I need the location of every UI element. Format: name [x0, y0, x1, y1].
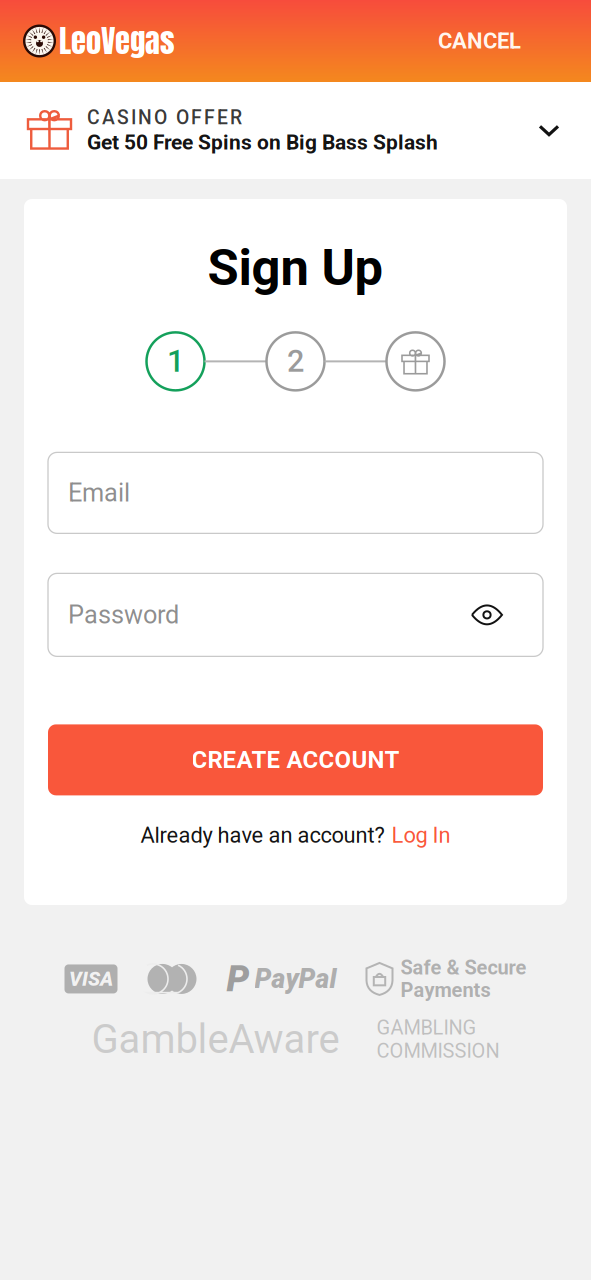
- staticText: LeoVegas: [59, 18, 175, 64]
- staticText: Password: [68, 600, 179, 630]
- staticText: 2: [287, 343, 304, 379]
- staticText: CANCEL: [438, 28, 521, 54]
- staticText: Already have an account?: [140, 822, 384, 848]
- button[interactable]: C A S I N O O F F E R: [0, 82, 591, 179]
- button[interactable]: CREATE ACCOUNT: [48, 724, 543, 795]
- staticText: 1: [167, 343, 184, 379]
- staticText: Safe & Secure: [400, 956, 526, 979]
- staticText: Email: [68, 478, 130, 508]
- staticText: VISA: [69, 967, 113, 991]
- staticText: GAMBLING: [376, 1016, 476, 1039]
- staticText: P: [226, 958, 249, 1000]
- staticText: Log In: [391, 822, 450, 848]
- staticText: Sign Up: [207, 238, 383, 297]
- button[interactable]: CANCEL: [434, 18, 525, 64]
- staticText: CREATE ACCOUNT: [191, 746, 399, 774]
- staticText: COMMISSION: [376, 1039, 499, 1063]
- staticText: GambleAware: [91, 1016, 339, 1063]
- staticText: PayPal: [254, 963, 336, 995]
- button[interactable]: Log In: [391, 822, 450, 848]
- button[interactable]: Show password: [464, 596, 510, 634]
- button[interactable]: LeoVegas home: [23, 12, 175, 70]
- staticText: C A S I N O O F F E R: [87, 106, 242, 129]
- staticText: Get 50 Free Spins on Big Bass Splash: [87, 130, 438, 155]
- staticText: Payments: [400, 978, 490, 1002]
